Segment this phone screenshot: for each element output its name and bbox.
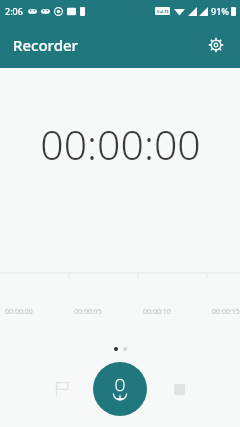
staticText: 00:00:00 — [40, 116, 201, 172]
staticText: 00:00:10 — [143, 307, 171, 317]
staticText: 00:00:05 — [74, 307, 102, 317]
button[interactable]: Add flag marker — [44, 372, 78, 406]
staticText: Recorder — [13, 35, 78, 55]
staticText: VoLTE — [157, 9, 169, 14]
button[interactable]: Stop recording — [162, 372, 196, 406]
staticText: 00:00:00 — [5, 307, 33, 317]
button[interactable]: Settings — [201, 30, 231, 60]
button[interactable]: Start recording — [93, 362, 147, 416]
staticText: 91% — [211, 5, 229, 17]
staticText: 2:06 — [5, 5, 23, 17]
staticText: 00:00:15 — [212, 307, 240, 317]
